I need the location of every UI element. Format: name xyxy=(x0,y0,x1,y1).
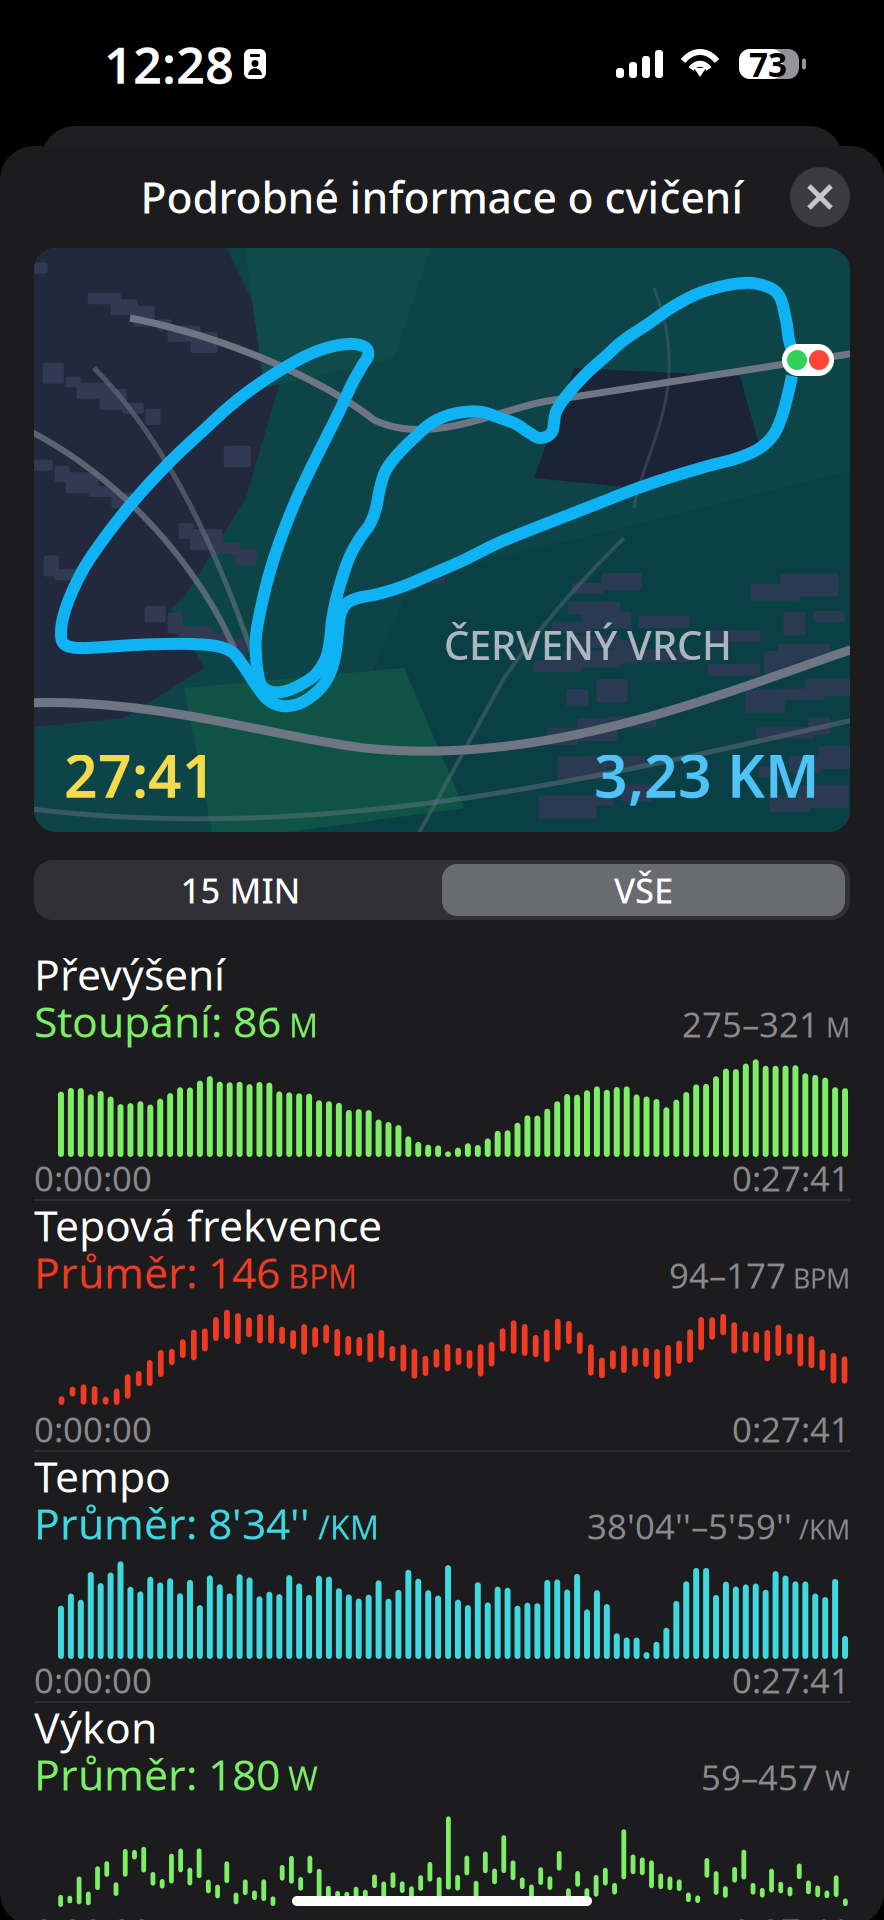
staticText: VŠE xyxy=(614,867,673,913)
staticText: /KM xyxy=(310,1506,379,1548)
staticText: 73 xyxy=(749,42,787,86)
staticText: Podrobné informace o cvičení xyxy=(140,169,743,225)
staticText: Průměr: 180 xyxy=(34,1746,280,1802)
staticText: 275–321 xyxy=(682,1001,819,1047)
staticText: W xyxy=(818,1762,850,1798)
staticText: 15 MIN xyxy=(180,867,300,913)
staticText: 0:27:41 xyxy=(732,1908,850,1920)
staticText: 0:00:00 xyxy=(34,1908,152,1920)
staticText: 38'04''–5'59'' xyxy=(587,1503,792,1549)
button[interactable]: Zavřít xyxy=(790,167,850,227)
staticText: Převýšení xyxy=(34,946,225,1002)
staticText: 27:41 xyxy=(64,736,216,814)
staticText: Průměr: 146 xyxy=(34,1244,280,1300)
staticText: Stoupání: 86 xyxy=(34,993,281,1049)
staticText: /KM xyxy=(792,1511,850,1547)
staticText: 0:00:00 xyxy=(34,1657,152,1703)
staticText: Tempo xyxy=(34,1448,171,1504)
staticText: 12:28 xyxy=(104,30,234,98)
staticText: BPM xyxy=(786,1260,850,1296)
staticText: 94–177 xyxy=(669,1252,786,1298)
staticText: 0:00:00 xyxy=(34,1155,152,1201)
staticText: M xyxy=(819,1009,850,1045)
button[interactable]: 15 MIN xyxy=(39,864,442,916)
staticText: 59–457 xyxy=(701,1754,818,1800)
staticText: BPM xyxy=(280,1255,357,1297)
staticText: W xyxy=(280,1757,318,1799)
staticText: ČERVENÝ VRCH xyxy=(444,618,732,671)
staticText: Tepová frekvence xyxy=(34,1197,382,1253)
button[interactable]: VŠE xyxy=(442,864,845,916)
staticText: 0:27:41 xyxy=(732,1155,850,1201)
staticText: 0:00:00 xyxy=(34,1406,152,1452)
staticText: 3,23 KM xyxy=(594,736,820,814)
staticText: M xyxy=(281,1004,318,1046)
staticText: Výkon xyxy=(34,1699,157,1755)
staticText: 0:27:41 xyxy=(732,1406,850,1452)
staticText: 0:27:41 xyxy=(732,1657,850,1703)
staticText: Průměr: 8'34'' xyxy=(34,1495,310,1551)
